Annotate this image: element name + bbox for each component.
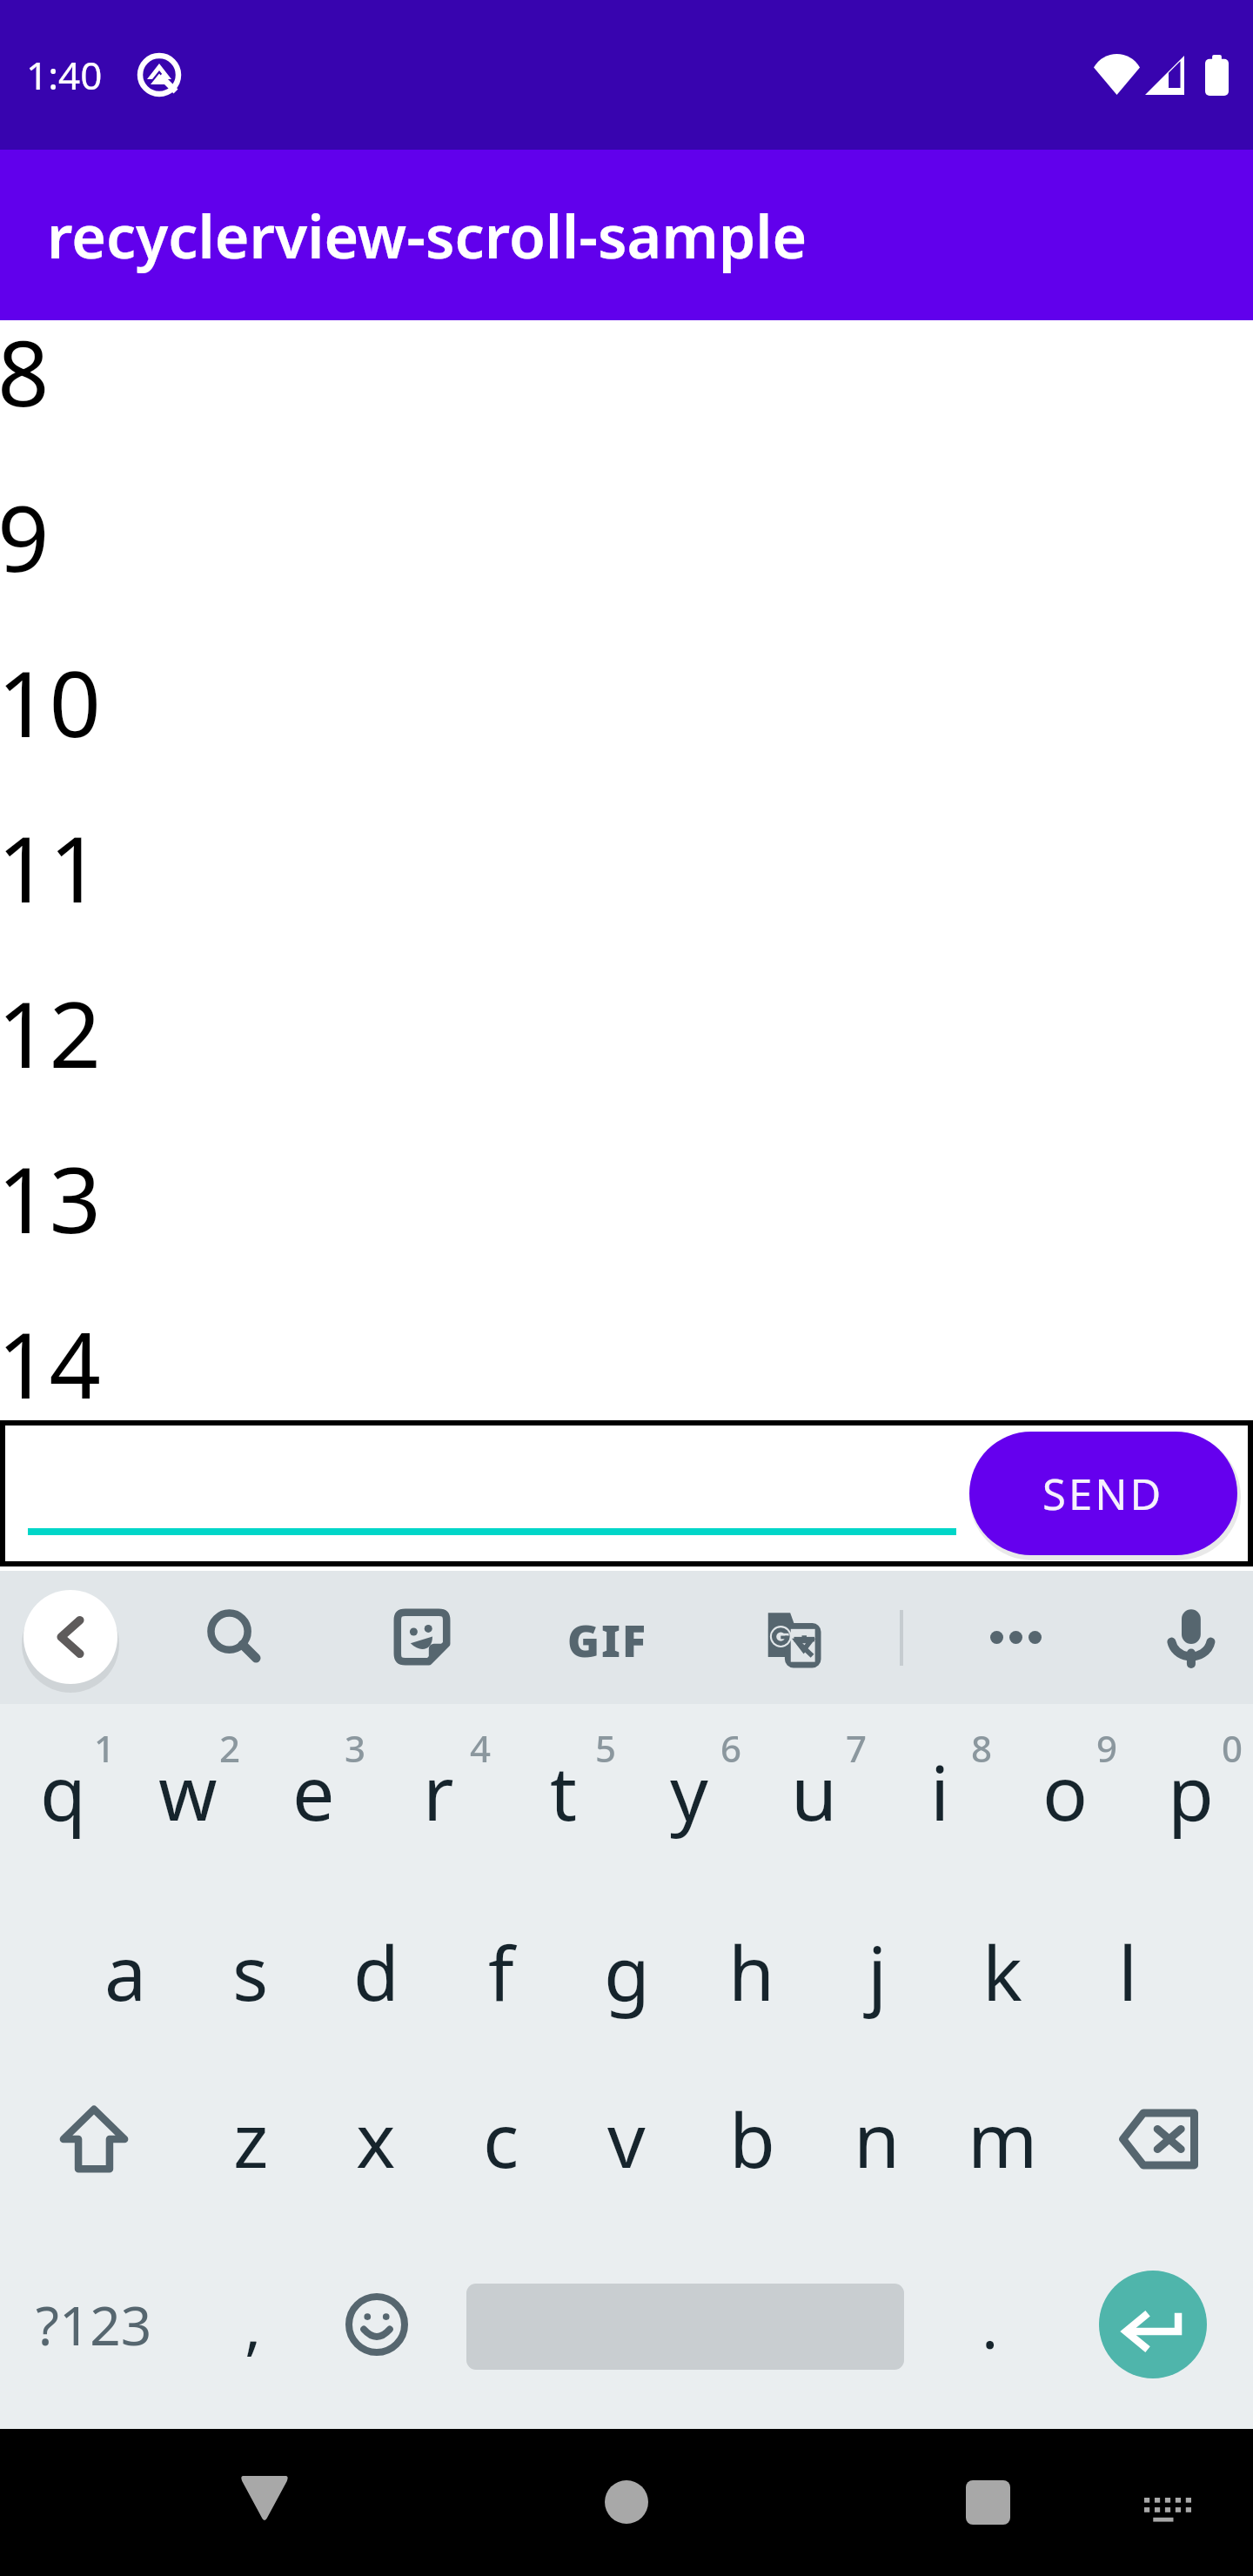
staticText: x	[356, 2088, 396, 2190]
button[interactable]: Space	[435, 2219, 928, 2429]
staticText: m	[968, 2088, 1038, 2190]
staticText: d	[353, 1921, 399, 2023]
staticText: n	[854, 2088, 901, 2190]
staticText: v	[607, 2088, 646, 2190]
button[interactable]: b	[689, 2058, 814, 2219]
button[interactable]: SEND	[969, 1432, 1237, 1555]
button[interactable]: Emoji	[318, 2219, 435, 2429]
staticText: 10	[0, 641, 101, 764]
staticText: 13	[0, 1137, 101, 1260]
staticText: e	[292, 1741, 335, 1842]
button[interactable]: a	[63, 1885, 188, 2058]
staticText: g	[604, 1921, 650, 2023]
button[interactable]: Enter	[1053, 2219, 1253, 2429]
button[interactable]: 9	[0, 486, 1253, 651]
staticText: 14	[0, 1302, 101, 1410]
staticText: q	[40, 1741, 86, 1842]
button[interactable]: .	[928, 2219, 1053, 2429]
button[interactable]: Hide keyboard toolbar	[23, 1590, 117, 1684]
staticText: r	[423, 1741, 454, 1842]
staticText: 4	[470, 1723, 492, 1773]
staticText: 9	[1096, 1723, 1118, 1773]
staticText: f	[488, 1921, 514, 2023]
staticText: i	[930, 1741, 950, 1842]
button[interactable]: 5	[501, 1704, 626, 1885]
button[interactable]: Voice input	[1151, 1595, 1235, 1679]
staticText: j	[868, 1921, 888, 2023]
button[interactable]: 3	[251, 1704, 376, 1885]
staticText: .	[982, 2282, 999, 2367]
staticText: 11	[0, 806, 101, 929]
button[interactable]: d	[313, 1885, 439, 2058]
button[interactable]: ?123	[0, 2219, 188, 2429]
button[interactable]: ,	[188, 2219, 318, 2429]
button[interactable]: 7	[752, 1704, 877, 1885]
button[interactable]: 4	[376, 1704, 501, 1885]
button[interactable]: k	[940, 1885, 1065, 2058]
staticText: 7	[846, 1723, 868, 1773]
staticText: y	[670, 1741, 708, 1842]
button[interactable]: s	[188, 1885, 313, 2058]
button[interactable]: g	[564, 1885, 689, 2058]
button[interactable]: v	[564, 2058, 689, 2219]
button[interactable]: 12	[0, 982, 1253, 1147]
button[interactable]: Stickers	[380, 1595, 464, 1679]
button[interactable]: 2	[125, 1704, 251, 1885]
button[interactable]: Recent apps	[935, 2450, 1040, 2554]
button[interactable]: Search	[191, 1596, 275, 1680]
button[interactable]: j	[814, 1885, 940, 2058]
button[interactable]: c	[439, 2058, 564, 2219]
button[interactable]: n	[814, 2058, 940, 2219]
staticText: GIF	[567, 1611, 647, 1665]
button[interactable]: 10	[0, 651, 1253, 816]
staticText: 2	[219, 1723, 241, 1773]
staticText: t	[550, 1741, 578, 1842]
staticText: 12	[0, 971, 101, 1095]
staticText: k	[982, 1921, 1022, 2023]
button[interactable]: 8	[0, 320, 1253, 486]
button[interactable]: GIF	[567, 1611, 654, 1665]
staticText: b	[729, 2088, 775, 2190]
staticText: 1:40	[26, 49, 103, 101]
staticText: ,	[245, 2282, 262, 2367]
button[interactable]: 1	[0, 1704, 125, 1885]
button[interactable]: 0	[1128, 1704, 1253, 1885]
button[interactable]: x	[313, 2058, 439, 2219]
staticText: p	[1168, 1741, 1214, 1842]
button[interactable]: 14	[0, 1312, 1253, 1420]
button[interactable]: Home	[574, 2450, 679, 2554]
staticText: 3	[345, 1723, 366, 1773]
staticText: SEND	[1042, 1465, 1164, 1523]
staticText: 1	[94, 1723, 116, 1773]
staticText: l	[1118, 1921, 1138, 2023]
staticText: 8	[0, 310, 50, 433]
staticText: 6	[720, 1723, 742, 1773]
staticText: 5	[595, 1723, 617, 1773]
button[interactable]: 13	[0, 1147, 1253, 1312]
button[interactable]: 9	[1002, 1704, 1128, 1885]
button[interactable]: z	[188, 2058, 313, 2219]
staticText: s	[232, 1921, 269, 2023]
button[interactable]: More options	[979, 1614, 1052, 1660]
button[interactable]: 11	[0, 816, 1253, 982]
staticText: recyclerview-scroll-sample	[47, 195, 807, 276]
button[interactable]: 6	[626, 1704, 752, 1885]
staticText: o	[1042, 1741, 1089, 1842]
button[interactable]: l	[1065, 1885, 1190, 2058]
button[interactable]: f	[439, 1885, 564, 2058]
staticText: h	[728, 1921, 775, 2023]
staticText: c	[483, 2088, 519, 2190]
staticText: u	[791, 1741, 838, 1842]
button[interactable]: Shift	[0, 2058, 188, 2219]
button[interactable]: 8	[877, 1704, 1002, 1885]
button[interactable]: h	[689, 1885, 814, 2058]
staticText: 0	[1222, 1723, 1243, 1773]
button[interactable]: m	[940, 2058, 1065, 2219]
staticText: z	[233, 2088, 269, 2190]
button[interactable]: Backspace	[1065, 2058, 1253, 2219]
staticText: 9	[0, 475, 50, 599]
button[interactable]: Back	[212, 2445, 317, 2550]
button[interactable]: Translate	[750, 1597, 834, 1680]
button[interactable]: Switch keyboard	[1121, 2464, 1215, 2558]
staticText: ?123	[36, 2288, 152, 2361]
